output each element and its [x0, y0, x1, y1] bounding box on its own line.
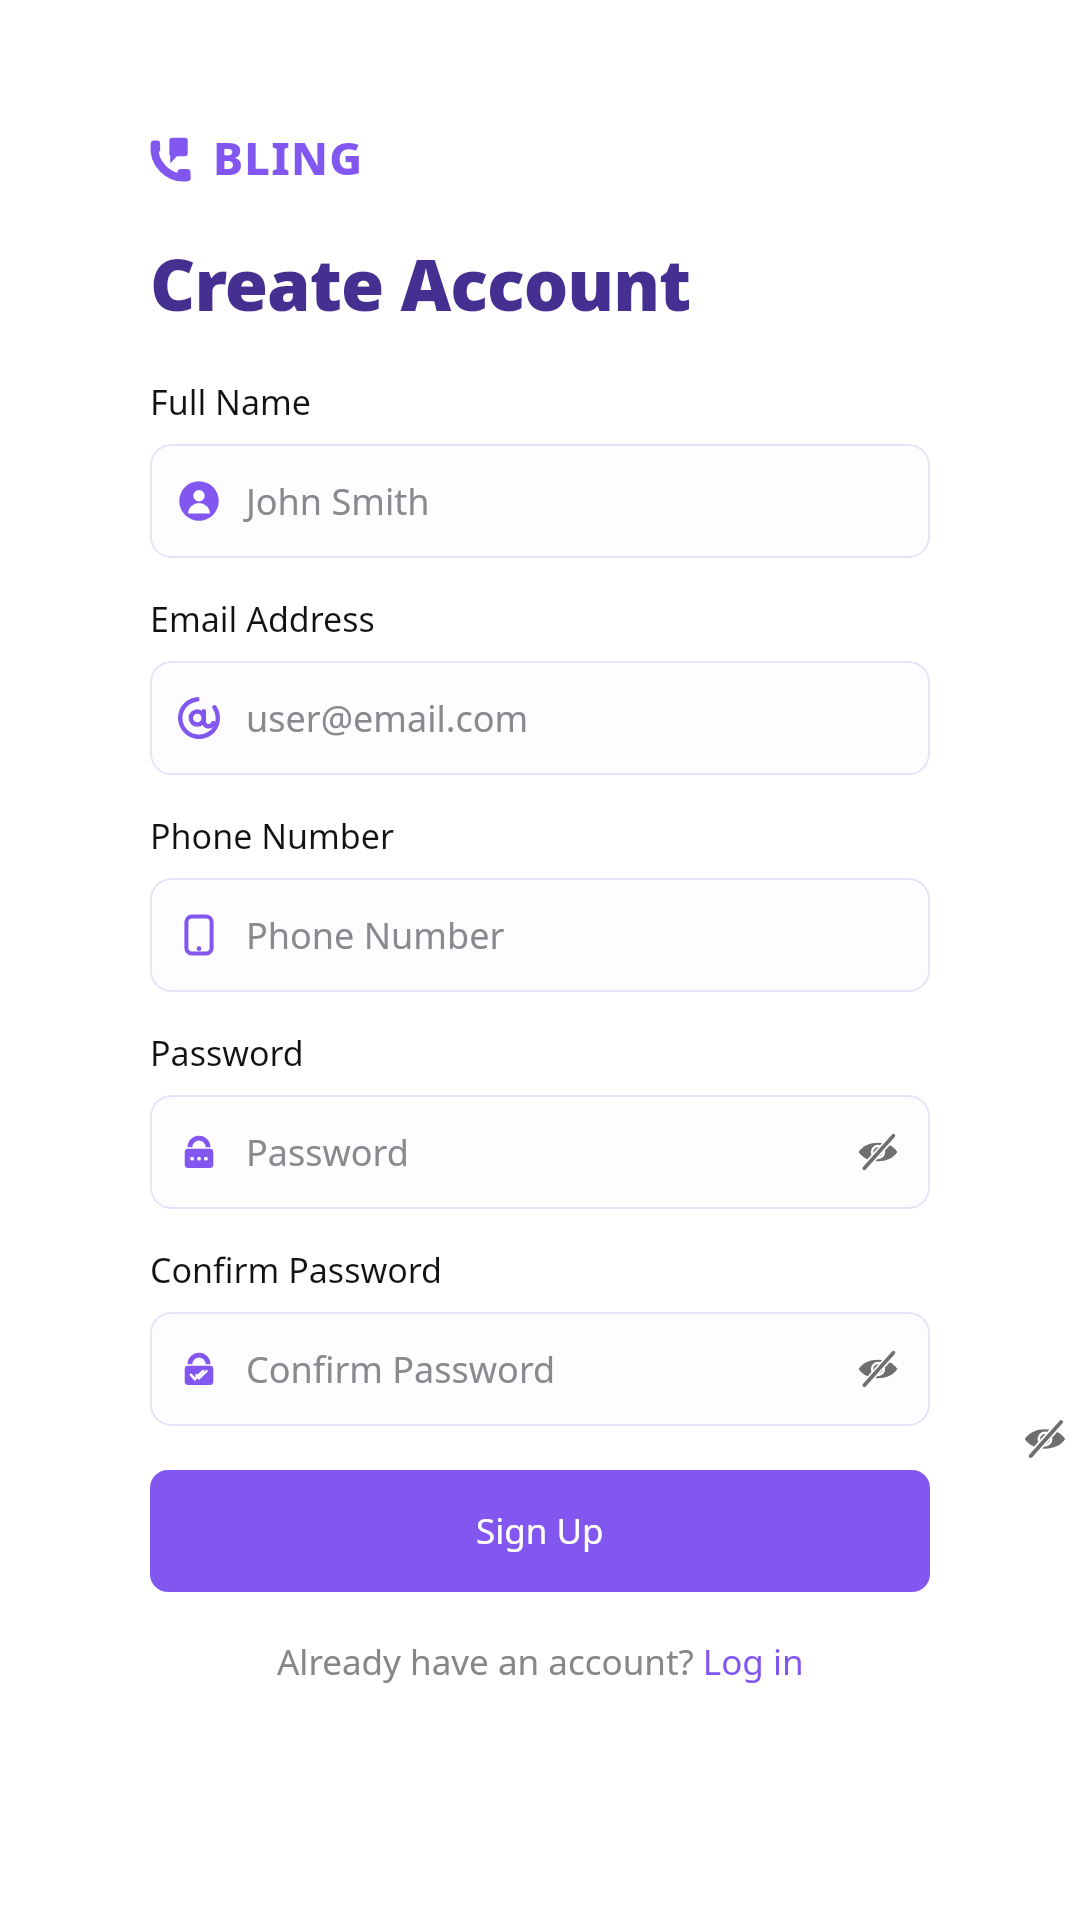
- staticText: user@email.com: [246, 694, 529, 743]
- staticText: Create Account: [150, 236, 691, 331]
- button[interactable]: Toggle password visibility: [1022, 1416, 1068, 1462]
- button[interactable]: Toggle password visibility: [854, 1345, 902, 1393]
- button[interactable]: Sign Up: [150, 1470, 930, 1592]
- button[interactable]: Toggle password visibility: [854, 1128, 902, 1176]
- staticText: Confirm Password: [150, 1247, 442, 1293]
- button[interactable]: John Smith: [150, 444, 930, 558]
- staticText: Full Name: [150, 379, 311, 425]
- staticText: Password: [246, 1128, 409, 1177]
- staticText: Email Address: [150, 596, 375, 642]
- staticText: BLING: [213, 127, 364, 188]
- staticText: Phone Number: [246, 911, 505, 960]
- button[interactable]: Password: [150, 1095, 930, 1209]
- button[interactable]: BLING: [150, 127, 364, 188]
- staticText: Sign Up: [476, 1507, 604, 1555]
- button[interactable]: user@email.com: [150, 661, 930, 775]
- button[interactable]: Phone Number: [150, 878, 930, 992]
- staticText: John Smith: [246, 477, 430, 526]
- staticText: Password: [150, 1030, 304, 1076]
- staticText: Phone Number: [150, 813, 394, 859]
- button[interactable]: Confirm Password: [150, 1312, 930, 1426]
- staticText: Confirm Password: [246, 1345, 556, 1394]
- button[interactable]: Already have an account? Log in: [269, 1634, 812, 1690]
